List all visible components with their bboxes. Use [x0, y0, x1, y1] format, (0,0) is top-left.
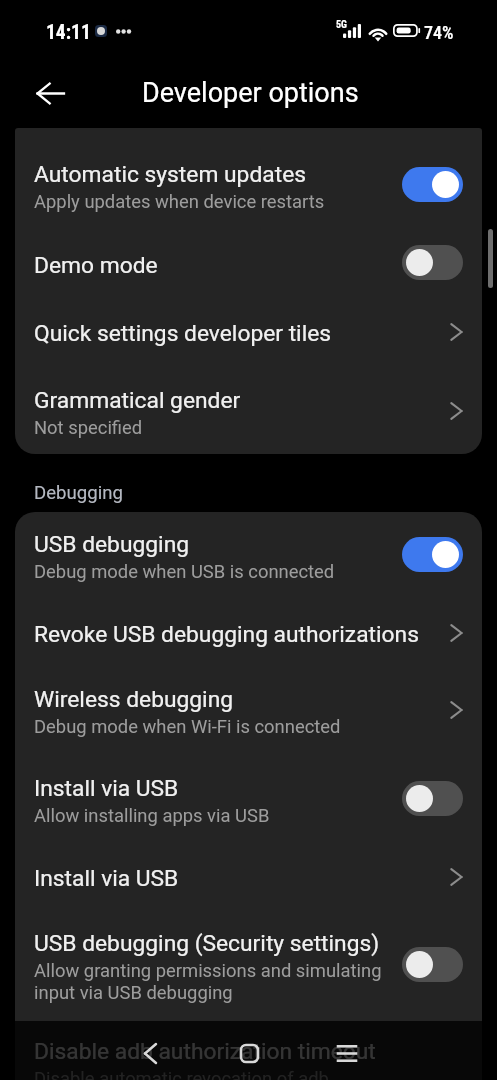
staticText: Allow granting permissions and simulatin…	[34, 960, 394, 1004]
staticText: 14:11	[46, 21, 91, 44]
staticText: Install via USB	[34, 775, 179, 802]
staticText: Disable automatic revocation of adb	[34, 1068, 329, 1080]
button[interactable]: Off	[402, 947, 463, 982]
button[interactable]: Home	[219, 1026, 279, 1080]
button[interactable]: USB debugging	[15, 512, 482, 601]
button[interactable]: Automatic system updates	[15, 128, 482, 230]
staticText: Wireless debugging	[34, 686, 234, 713]
staticText: Allow installing apps via USB	[34, 805, 270, 827]
staticText: 5G	[336, 19, 347, 31]
staticText: USB debugging	[34, 531, 190, 558]
button[interactable]: Recent apps	[317, 1026, 377, 1080]
staticText: Debug mode when Wi-Fi is connected	[34, 716, 341, 738]
staticText: Not specified	[34, 417, 143, 439]
staticText: Quick settings developer tiles	[34, 320, 332, 347]
button[interactable]: Navigate back	[26, 69, 74, 117]
staticText: Grammatical gender	[34, 387, 241, 414]
button[interactable]: On	[402, 167, 463, 202]
button[interactable]: Quick settings developer tiles	[15, 301, 482, 367]
staticText: Automatic system updates	[34, 161, 306, 188]
staticText: USB debugging (Security settings)	[34, 930, 380, 957]
staticText: Demo mode	[34, 252, 158, 279]
button[interactable]: Install via USB	[15, 846, 482, 911]
button[interactable]: USB debugging (Security settings)	[15, 911, 482, 1020]
button[interactable]: Install via USB	[15, 754, 482, 846]
button[interactable]: On	[402, 537, 463, 572]
button[interactable]: Off	[402, 781, 463, 816]
staticText: Developer options	[142, 77, 359, 109]
button[interactable]: Back	[120, 1026, 180, 1080]
button[interactable]: Off	[402, 245, 463, 280]
staticText: Disable adb authorization timeout	[34, 1038, 376, 1065]
button[interactable]: Disable adb authorization timeout	[15, 1020, 482, 1080]
staticText: Install via USB	[34, 865, 179, 892]
staticText: 74%	[424, 22, 454, 43]
button[interactable]: Grammatical gender	[15, 367, 482, 454]
button[interactable]: Demo mode	[15, 230, 482, 301]
staticText: Debug mode when USB is connected	[34, 561, 335, 583]
button[interactable]: Revoke USB debugging authorizations	[15, 601, 482, 667]
staticText: Revoke USB debugging authorizations	[34, 621, 419, 648]
button[interactable]: Wireless debugging	[15, 667, 482, 754]
staticText: Debugging	[34, 482, 123, 504]
staticText: Apply updates when device restarts	[34, 191, 325, 213]
